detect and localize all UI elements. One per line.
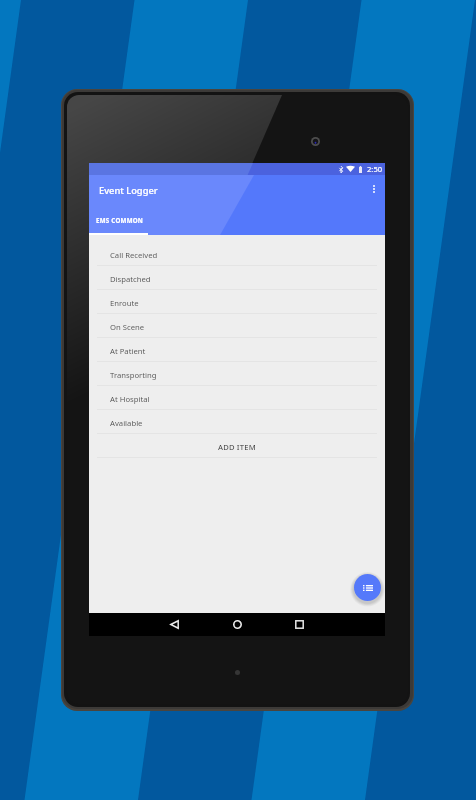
button[interactable]: Dispatched — [89, 266, 385, 290]
button[interactable]: Call Received — [89, 242, 385, 266]
staticText: On Scene — [110, 322, 145, 332]
staticText: At Hospital — [110, 394, 150, 404]
button[interactable]: At Patient — [89, 338, 385, 362]
staticText: Dispatched — [110, 274, 151, 284]
staticText: Enroute — [110, 298, 139, 308]
button[interactable]: Enroute — [89, 290, 385, 314]
staticText: Available — [110, 418, 143, 428]
staticText: Transporting — [110, 370, 157, 380]
staticText: Call Received — [110, 250, 158, 260]
button[interactable]: On Scene — [89, 314, 385, 338]
button[interactable]: Recent apps — [288, 613, 311, 636]
staticText: 2:50 — [367, 164, 383, 174]
button[interactable]: Transporting — [89, 362, 385, 386]
button[interactable]: More options — [363, 178, 385, 200]
button[interactable]: ADD ITEM — [89, 434, 385, 458]
staticText: Event Logger — [99, 184, 158, 197]
staticText: At Patient — [110, 346, 146, 356]
button[interactable]: Home — [226, 613, 249, 636]
staticText: EMS COMMON — [96, 216, 144, 224]
staticText: ADD ITEM — [218, 442, 256, 452]
button[interactable]: Back — [163, 613, 186, 636]
button[interactable]: At Hospital — [89, 386, 385, 410]
button[interactable]: Show list — [354, 574, 381, 601]
button[interactable]: Available — [89, 410, 385, 434]
button[interactable]: EMS COMMON — [89, 210, 148, 235]
